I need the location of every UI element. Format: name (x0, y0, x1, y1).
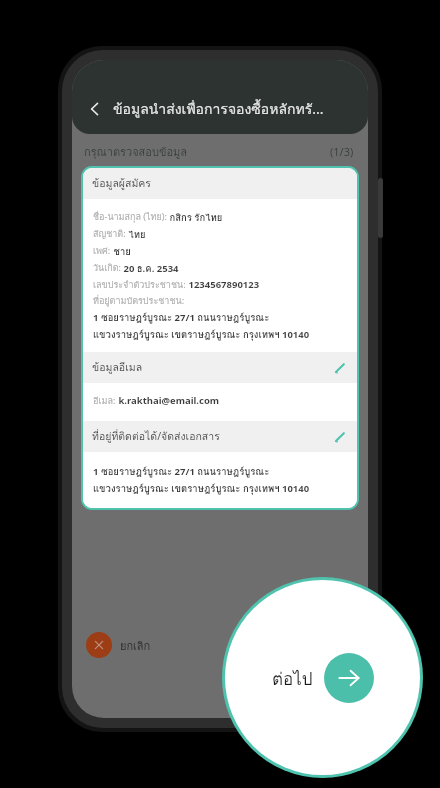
staticText: ที่อยู่ตามบัตรประชาชน: (93, 294, 185, 308)
button[interactable]: ข้อมูลผู้สมัคร (83, 168, 357, 199)
staticText: ต่อไป (272, 665, 313, 692)
staticText: ข้อมูลนำส่งเพื่อการจองซื้อหลักทรั... (113, 98, 324, 120)
staticText: ข้อมูลอีเมล (92, 359, 332, 376)
staticText: 1 ซอยราษฎร์บูรณะ 27/1 ถนนราษฎร์บูรณะ (93, 310, 270, 325)
button[interactable]: Edit (332, 360, 348, 376)
staticText: 1 ซอยราษฎร์บูรณะ 27/1 ถนนราษฎร์บูรณะ (93, 464, 270, 479)
staticText: (1/3) (330, 144, 354, 159)
staticText: กรุณาตรวจสอบข้อมูล (84, 143, 330, 160)
staticText: อีเมล: (93, 394, 116, 408)
staticText: วันเกิด: (93, 261, 121, 275)
staticText: สัญชาติ: (93, 227, 126, 241)
staticText: กสิกร รักไทย (167, 210, 223, 225)
staticText: ข้อมูลผู้สมัคร (92, 175, 348, 192)
staticText: ชื่อ-นามสกุล (ไทย): (93, 210, 167, 224)
button[interactable]: Edit (332, 429, 348, 445)
button[interactable]: ต่อไป (225, 580, 420, 775)
other: Next (324, 653, 374, 703)
button[interactable]: ข้อมูลอีเมล (83, 352, 357, 383)
staticText: แขวงราษฎร์บูรณะ เขตราษฎร์บูรณะ กรุงเทพฯ … (93, 481, 310, 496)
button[interactable]: ที่อยู่ที่ติดต่อได้/จัดส่งเอกสาร (83, 421, 357, 452)
staticText: k.rakthai@email.com (116, 394, 220, 407)
staticText: 20 ธ.ค. 2534 (121, 261, 179, 276)
staticText: ยกเลิก (120, 637, 151, 654)
staticText: ชาย (111, 244, 131, 259)
staticText: 1234567890123 (186, 278, 260, 291)
staticText: ที่อยู่ที่ติดต่อได้/จัดส่งเอกสาร (92, 428, 332, 445)
staticText: เลขประจำตัวประชาชน: (93, 278, 186, 292)
button[interactable]: ยกเลิก (86, 632, 151, 658)
staticText: ไทย (126, 227, 146, 242)
staticText: เพศ: (93, 244, 111, 258)
staticText: แขวงราษฎร์บูรณะ เขตราษฎร์บูรณะ กรุงเทพฯ … (93, 327, 310, 342)
button[interactable]: Back (82, 96, 108, 122)
